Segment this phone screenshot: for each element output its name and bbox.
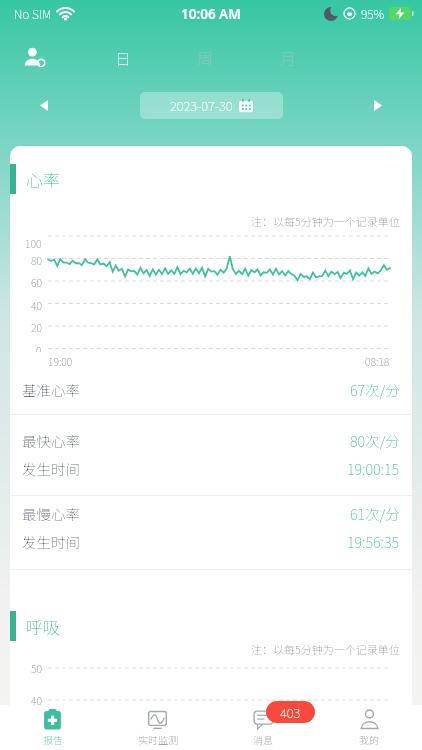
button[interactable] xyxy=(40,100,48,111)
staticText: 实时监测 xyxy=(138,732,178,746)
staticText: 2023-07-30 xyxy=(170,96,233,115)
staticText: 80 xyxy=(31,253,42,268)
button[interactable]: 日 xyxy=(115,46,132,69)
staticText: 60 xyxy=(31,275,42,290)
staticText: 基准心率 xyxy=(22,379,80,400)
button[interactable] xyxy=(374,100,382,111)
staticText: 61次/分 xyxy=(350,503,400,524)
button[interactable]: 月 xyxy=(280,46,297,69)
staticText: 注：以每5分钟为一个记录单位 xyxy=(251,641,400,657)
staticText: 最快心率 xyxy=(22,430,80,451)
staticText: 19:56:35 xyxy=(347,531,400,552)
button[interactable]: 发生时间 xyxy=(22,455,400,481)
button[interactable]: 2023-07-30 xyxy=(170,96,253,115)
staticText: 08:18 xyxy=(365,354,390,369)
staticText: 19:00 xyxy=(48,354,73,369)
button[interactable]: 报告 xyxy=(0,705,105,750)
button[interactable]: 最快心率 xyxy=(22,427,400,453)
staticText: 呼吸 xyxy=(26,614,60,639)
button[interactable]: 我的 xyxy=(316,705,422,750)
button[interactable] xyxy=(24,47,45,68)
staticText: 发生时间 xyxy=(22,531,80,552)
button[interactable]: 最慢心率 xyxy=(22,500,400,526)
staticText: 403 xyxy=(280,703,301,722)
button[interactable]: 实时监测 xyxy=(105,705,210,750)
staticText: 最慢心率 xyxy=(22,503,80,524)
staticText: 0 xyxy=(36,343,42,352)
staticText: 心率 xyxy=(26,167,60,192)
staticText: 报告 xyxy=(43,732,63,746)
staticText: 95% xyxy=(361,5,385,22)
staticText: 50 xyxy=(31,661,42,676)
staticText: 40 xyxy=(31,298,42,313)
staticText: 67次/分 xyxy=(350,379,400,400)
staticText: No SIM xyxy=(14,5,52,22)
button[interactable]: 周 xyxy=(197,46,214,69)
staticText: 100 xyxy=(25,236,42,251)
staticText: 注：以每5分钟为一个记录单位 xyxy=(251,213,400,229)
staticText: 10:06 AM xyxy=(181,5,241,23)
staticText: 我的 xyxy=(359,732,379,746)
staticText: 20 xyxy=(31,320,42,335)
staticText: 40 xyxy=(31,693,42,708)
staticText: 19:00:15 xyxy=(347,458,400,479)
button[interactable]: 403 xyxy=(210,705,316,750)
staticText: 发生时间 xyxy=(22,458,80,479)
staticText: 消息 xyxy=(253,732,273,746)
button[interactable]: 发生时间 xyxy=(22,528,400,554)
button[interactable]: 基准心率 xyxy=(22,376,400,402)
staticText: 80次/分 xyxy=(350,430,400,451)
